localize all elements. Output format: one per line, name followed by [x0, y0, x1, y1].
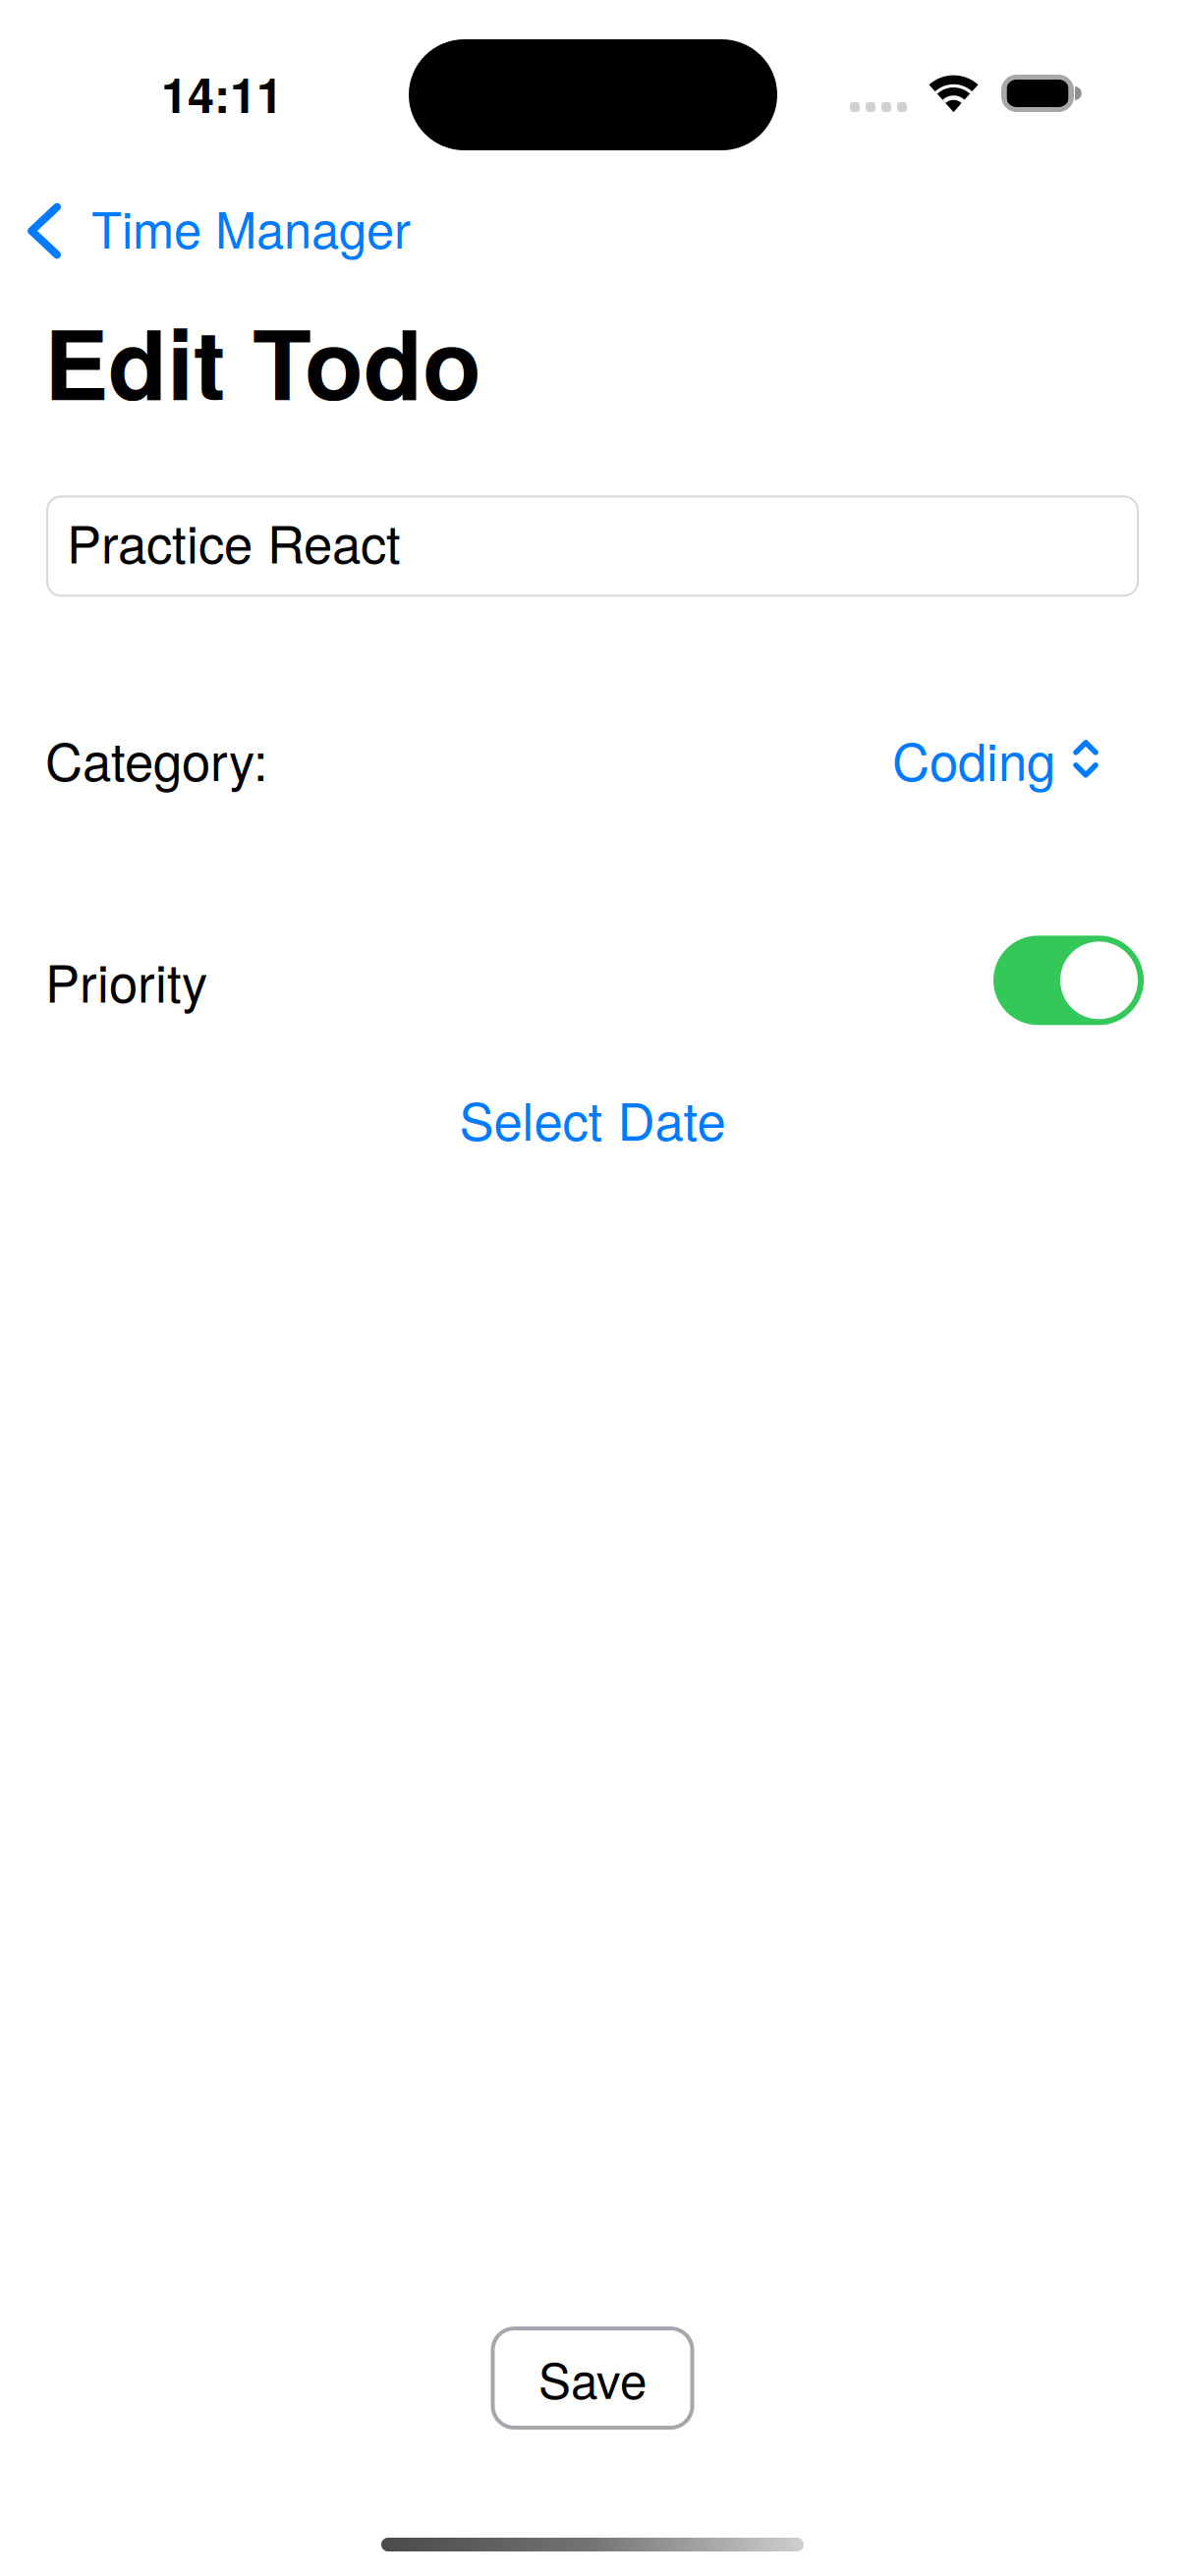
button[interactable]: Priority — [0, 936, 1185, 1025]
button[interactable]: Back to Time Manager — [0, 190, 1185, 268]
staticText: Save — [538, 2343, 647, 2413]
staticText: Practice React — [67, 504, 401, 578]
button[interactable]: Save — [493, 2328, 692, 2428]
staticText: Select Date — [459, 1081, 726, 1155]
staticText: Category: — [45, 722, 268, 796]
staticText: Edit Todo — [44, 292, 481, 430]
staticText: 14:11 — [161, 59, 283, 128]
button[interactable]: Select Date — [459, 1090, 726, 1147]
button[interactable]: Category: — [0, 719, 1185, 798]
staticText: Priority — [45, 943, 207, 1017]
staticText: Time Manager — [91, 191, 411, 263]
staticText: Coding — [892, 722, 1055, 796]
button[interactable]: Practice React — [47, 496, 1138, 596]
